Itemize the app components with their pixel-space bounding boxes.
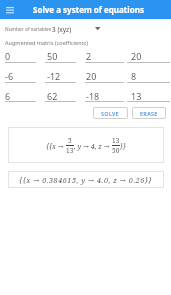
staticText: 2 [86,50,92,62]
staticText: -18 [86,90,100,102]
button[interactable] [85,88,124,104]
button[interactable] [45,48,76,64]
button[interactable] [5,48,36,64]
staticText: -12 [47,70,61,82]
button[interactable] [127,48,170,64]
staticText: 50 [112,146,120,155]
button[interactable] [45,68,76,84]
button[interactable] [127,88,170,104]
staticText: Number of variables [5,26,52,33]
staticText: -6 [5,70,14,82]
button[interactable] [127,68,170,84]
staticText: 0 [5,50,11,62]
staticText: }} [120,142,126,152]
staticText: 13 [131,90,142,102]
staticText: 13 [66,146,74,155]
staticText: {{x → 0.384615, y → 4.0, z → 0.26}} [19,175,153,185]
button[interactable] [85,68,124,84]
button[interactable] [85,48,124,64]
staticText: {{x → [46,142,66,152]
staticText: 62 [47,90,58,102]
button[interactable] [45,88,76,104]
staticText: ERASE [140,110,158,117]
staticText: , y → 4, z → [74,142,112,152]
staticText: 20 [86,70,97,82]
button[interactable]: {{x → [8,127,164,163]
button[interactable] [4,4,15,15]
staticText: SOLVE [101,110,120,117]
staticText: Augmented matrix (coefficients) [5,39,88,46]
button[interactable]: Number of variables [0,20,171,33]
staticText: Solve a system of equations [33,4,144,15]
button[interactable]: {{x → 0.384615, y → 4.0, z → 0.26}} [8,171,164,188]
staticText: 50 [47,50,58,62]
staticText: 3 (xyz) [52,25,72,34]
staticText: 8 [131,70,137,82]
button[interactable]: SOLVE [93,107,128,119]
button[interactable] [5,88,36,104]
button[interactable]: ERASE [132,107,166,119]
staticText: 5 [68,136,72,145]
staticText: 6 [5,90,11,102]
staticText: 13 [112,136,120,145]
button[interactable] [5,68,36,84]
staticText: 20 [131,50,142,62]
